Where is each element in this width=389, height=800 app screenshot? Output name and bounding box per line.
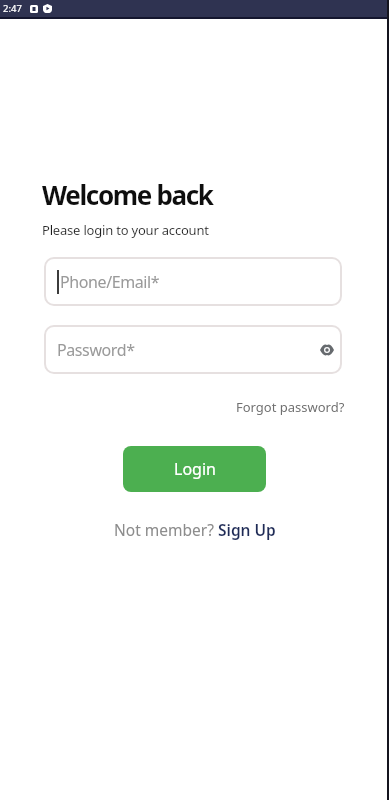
button[interactable]: Login [123,446,266,492]
staticText: Phone/Email* [60,271,160,293]
button[interactable]: Forgot password? [236,398,345,416]
staticText: Password* [57,339,135,361]
staticText: Welcome back [42,177,213,212]
button[interactable] [320,345,334,355]
button[interactable]: Password* [44,325,342,374]
button[interactable]: Phone/Email* [44,257,342,306]
staticText: Please login to your account [42,221,209,239]
button[interactable]: Sign Up [218,519,276,540]
staticText: Not member? [114,519,218,540]
staticText: 2:47 [3,2,22,15]
staticText: Login [174,458,216,480]
